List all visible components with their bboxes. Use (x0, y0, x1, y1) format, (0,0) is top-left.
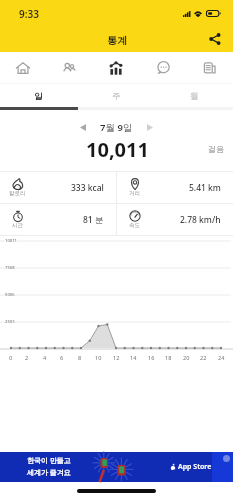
staticText: 7508 (5, 265, 15, 271)
staticText: 18 (165, 354, 172, 362)
staticText: 9:33 (19, 7, 39, 21)
button[interactable]: Previous day (72, 118, 94, 137)
staticText: 2503 (5, 319, 15, 325)
staticText: 2 (25, 354, 29, 362)
staticText: 0 (9, 354, 13, 362)
staticText: 4 (43, 354, 47, 362)
button[interactable]: 월 (155, 86, 233, 107)
button[interactable]: Statistics (92, 53, 139, 83)
staticText: 14 (130, 354, 137, 362)
button[interactable]: News (186, 53, 233, 83)
button[interactable]: Share (203, 27, 227, 51)
staticText: 세계가 즐겨요 (27, 468, 71, 478)
staticText: 8 (78, 354, 82, 362)
staticText: 거리 (129, 190, 140, 197)
staticText: 81 분 (83, 214, 104, 226)
staticText: 월 (190, 91, 199, 102)
button[interactable]: Next day (139, 118, 161, 137)
staticText: 걸음 (208, 144, 224, 154)
staticText: 24 (218, 354, 225, 362)
staticText: 20 (183, 354, 190, 362)
staticText: 칼로리 (9, 190, 26, 197)
staticText: 2.78 km/h (180, 214, 221, 226)
staticText: 10,011 (86, 136, 149, 162)
staticText: 통계 (107, 34, 127, 47)
button[interactable]: 한국이 만들고 (0, 452, 233, 482)
button[interactable]: Home (0, 53, 46, 83)
staticText: 주 (112, 91, 121, 102)
button[interactable]: Friends (46, 53, 92, 83)
button[interactable]: 거리 (117, 172, 233, 203)
staticText: 10011 (5, 238, 17, 244)
staticText: 10 (95, 354, 102, 362)
button[interactable]: 일 (0, 86, 77, 107)
staticText: 속도 (129, 222, 140, 229)
button[interactable]: Ad info (223, 455, 230, 462)
button[interactable]: 속도 (117, 204, 233, 235)
staticText: 22 (200, 354, 207, 362)
staticText: 한국이 만들고 (27, 456, 71, 466)
staticText: 12 (113, 354, 120, 362)
button[interactable]: 시간 (0, 204, 116, 235)
staticText: 일 (34, 91, 43, 102)
staticText: App Store (178, 462, 212, 472)
staticText: 7월 9일 (100, 121, 133, 134)
button[interactable]: Chat (139, 53, 186, 83)
staticText: 시간 (12, 222, 23, 229)
staticText: 333 kcal (71, 182, 104, 194)
button[interactable]: 칼로리 (0, 172, 116, 203)
button[interactable]: 주 (77, 86, 155, 107)
staticText: 5.41 km (189, 182, 221, 194)
staticText: 5006 (5, 292, 15, 298)
staticText: 6 (60, 354, 64, 362)
staticText: 16 (148, 354, 155, 362)
